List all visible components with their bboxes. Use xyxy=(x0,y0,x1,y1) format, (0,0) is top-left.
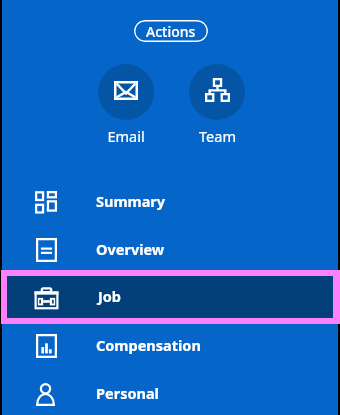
button[interactable]: Personal xyxy=(2,370,338,415)
button[interactable]: Email xyxy=(96,64,156,146)
staticText: Overview xyxy=(96,239,165,259)
button[interactable]: Summary xyxy=(2,178,338,226)
staticText: Team xyxy=(199,126,236,146)
button[interactable]: Compensation xyxy=(2,322,338,370)
button[interactable]: Overview xyxy=(2,226,338,274)
staticText: Actions xyxy=(146,22,196,41)
button[interactable]: Job xyxy=(7,276,333,318)
staticText: Personal xyxy=(96,383,159,403)
staticText: Job xyxy=(98,286,122,306)
button[interactable]: Team xyxy=(187,64,247,146)
staticText: Email xyxy=(107,126,145,146)
button[interactable]: Actions xyxy=(134,20,208,42)
staticText: Summary xyxy=(96,191,166,211)
staticText: Compensation xyxy=(96,335,201,355)
